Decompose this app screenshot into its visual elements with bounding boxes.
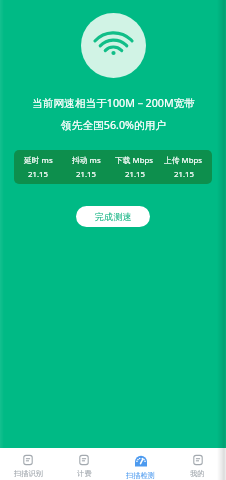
staticText: 21.15 — [28, 169, 48, 180]
staticText: 当前网速相当于100M－200M宽带 — [32, 96, 195, 111]
button[interactable]: 我的 — [169, 448, 226, 480]
staticText: 延时 ms — [24, 155, 53, 166]
staticText: 我的 — [190, 469, 205, 478]
staticText: 完成测速 — [95, 211, 132, 222]
staticText: 领先全国56.0%的用户 — [61, 118, 166, 133]
staticText: 21.15 — [174, 169, 194, 180]
staticText: 上传 Mbps — [164, 155, 203, 166]
staticText: 扫描识别 — [14, 469, 43, 478]
staticText: 下载 Mbps — [115, 155, 154, 166]
staticText: 21.15 — [125, 169, 145, 180]
staticText: 抖动 ms — [72, 155, 101, 166]
staticText: 扫描检测 — [126, 471, 155, 480]
button[interactable]: 扫描检测 — [112, 448, 169, 480]
button[interactable]: 完成测速 — [76, 206, 150, 227]
button[interactable]: 计费 — [56, 448, 112, 480]
staticText: 21.15 — [76, 169, 96, 180]
button[interactable]: 扫描识别 — [0, 448, 56, 480]
staticText: 计费 — [77, 469, 92, 478]
